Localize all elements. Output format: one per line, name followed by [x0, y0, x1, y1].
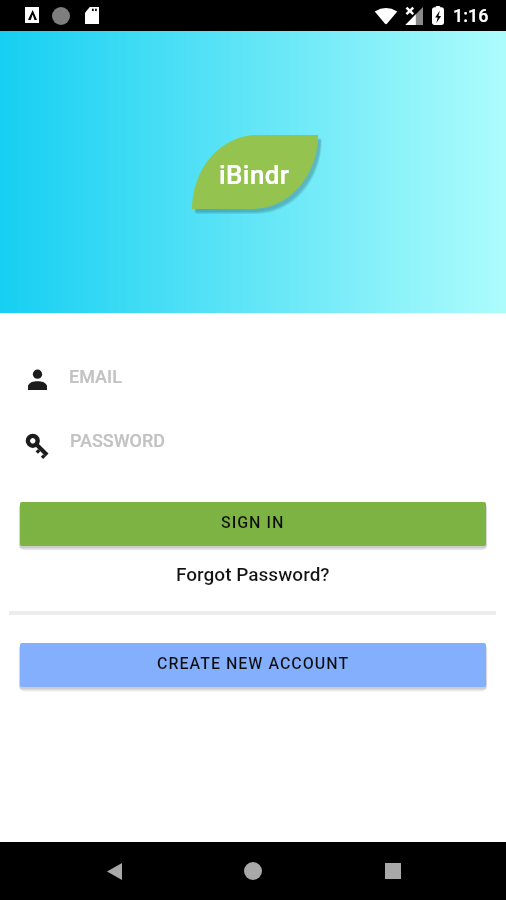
staticText: SIGN IN: [221, 513, 285, 532]
staticText: Forgot Password?: [176, 563, 330, 585]
button[interactable]: Forgot Password?: [0, 561, 506, 587]
staticText: PASSWORD: [70, 430, 165, 451]
button[interactable]: CREATE NEW ACCOUNT: [20, 643, 486, 687]
staticText: EMAIL: [69, 366, 122, 387]
button[interactable]: SIGN IN: [20, 502, 486, 546]
staticText: CREATE NEW ACCOUNT: [157, 654, 350, 673]
button[interactable]: Home: [229, 842, 277, 900]
button[interactable]: Recent apps: [369, 842, 417, 900]
staticText: iBindr: [219, 160, 290, 190]
staticText: 1:16: [453, 5, 489, 26]
button[interactable]: Back: [90, 842, 138, 900]
